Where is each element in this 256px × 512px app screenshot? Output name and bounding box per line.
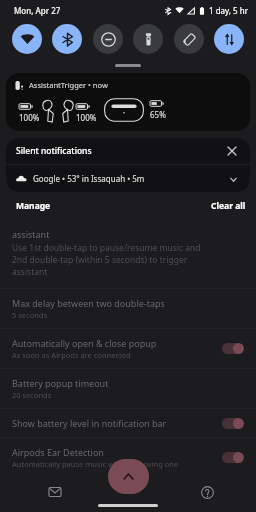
button[interactable]: Bluetooth [52, 24, 82, 54]
button[interactable]: Max delay between two double-taps [0, 289, 256, 328]
button[interactable]: Clear all [211, 200, 246, 212]
button[interactable]: Toggle [222, 418, 244, 429]
staticText: 5 seconds [12, 310, 48, 320]
button[interactable]: Dismiss [224, 143, 240, 159]
staticText: 2nd double-tap (within 5 seconds) to tri… [12, 254, 188, 266]
button[interactable]: Scroll up [108, 459, 149, 494]
button[interactable]: Manage [16, 200, 51, 212]
staticText: Silent notifications [16, 145, 224, 157]
button[interactable]: AssistantTrigger • now [6, 73, 250, 131]
staticText: 1 day, 5 hr [209, 5, 248, 16]
button[interactable]: Toggle [222, 343, 244, 354]
staticText: 100% [76, 112, 97, 123]
staticText: Manage [16, 200, 51, 212]
staticText: Airpods Ear Detection [12, 446, 104, 458]
staticText: 100% [19, 112, 40, 123]
staticText: 20 seconds [12, 390, 52, 400]
button[interactable]: Flashlight [133, 24, 163, 54]
button[interactable]: Battery popup timeout [0, 369, 256, 408]
button[interactable]: Airpods Ear Detection [0, 438, 256, 477]
staticText: assistant [12, 266, 48, 278]
staticText: Automatically open & close popup [12, 337, 157, 349]
staticText: assistant [12, 228, 50, 240]
button[interactable]: Show battery level in notification bar [0, 409, 256, 437]
button[interactable]: Do not disturb [93, 24, 123, 54]
staticText: AssistantTrigger • now [29, 80, 108, 90]
staticText: Use 1st double-tap to pause/resume music… [12, 242, 201, 254]
button[interactable]: Wi-Fi [12, 24, 42, 54]
staticText: 65% [150, 109, 166, 120]
staticText: Google • 53° in Issaquah • 5m [33, 173, 226, 184]
staticText: Battery popup timeout [12, 377, 109, 389]
button[interactable]: Mail [44, 481, 66, 503]
staticText: Max delay between two double-taps [12, 297, 165, 309]
staticText: As soon as Airpods are connected [12, 350, 131, 360]
staticText: Mon, Apr 27 [14, 5, 61, 16]
button[interactable]: Auto-rotate [174, 24, 204, 54]
button[interactable]: Silent notifications [6, 138, 250, 164]
staticText: Clear all [211, 200, 246, 212]
button[interactable]: Automatically open & close popup [0, 329, 256, 368]
button[interactable]: Expand [226, 172, 240, 186]
staticText: Automatically pause music when removing … [12, 459, 179, 469]
button[interactable]: Help [196, 481, 218, 503]
button[interactable]: Mobile data [214, 24, 244, 54]
staticText: Show battery level in notification bar [12, 417, 167, 429]
button[interactable]: Toggle [222, 452, 244, 463]
button[interactable]: Google • 53° in Issaquah • 5m [6, 165, 250, 192]
